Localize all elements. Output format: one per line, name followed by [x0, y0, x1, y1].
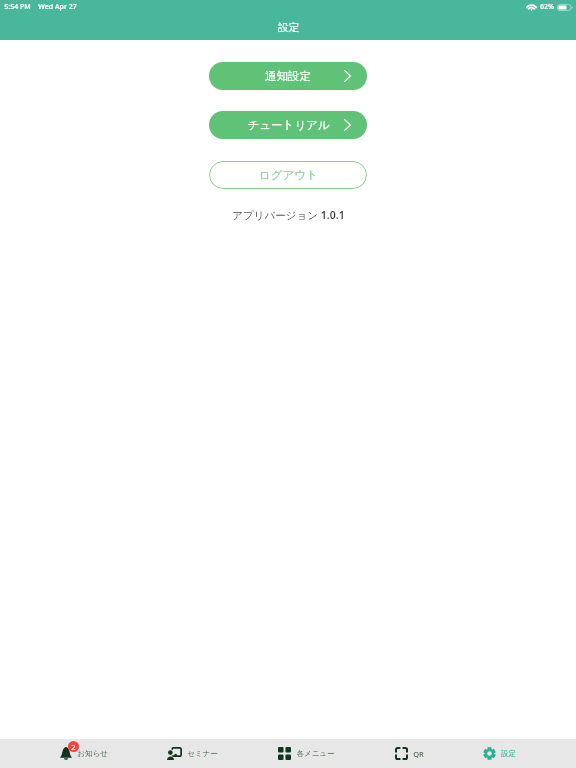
staticText: 通知設定	[265, 69, 311, 83]
staticText: アプリバージョン 1.0.1	[232, 208, 345, 222]
button[interactable]: 2	[60, 739, 108, 768]
staticText: セミナー	[187, 749, 218, 758]
staticText: 各メニュー	[296, 749, 335, 758]
staticText: QR	[413, 749, 424, 759]
button[interactable]: 設定	[483, 739, 516, 768]
button[interactable]: チュートリアル	[209, 111, 367, 139]
staticText: Wed Apr 27	[38, 2, 77, 12]
button[interactable]: 通知設定	[209, 62, 367, 90]
staticText: 設定	[501, 749, 516, 758]
button[interactable]: セミナー	[167, 739, 218, 768]
button[interactable]: 各メニュー	[278, 739, 335, 768]
staticText: 5:54 PM	[4, 2, 31, 12]
staticText: お知らせ	[77, 749, 108, 758]
staticText: 2	[71, 742, 76, 752]
staticText: ログアウト	[259, 168, 318, 182]
staticText: チュートリアル	[247, 118, 330, 132]
button[interactable]: ログアウト	[209, 161, 367, 189]
button[interactable]: QR	[395, 739, 424, 768]
staticText: 設定	[278, 21, 299, 34]
staticText: 62%	[540, 2, 554, 12]
